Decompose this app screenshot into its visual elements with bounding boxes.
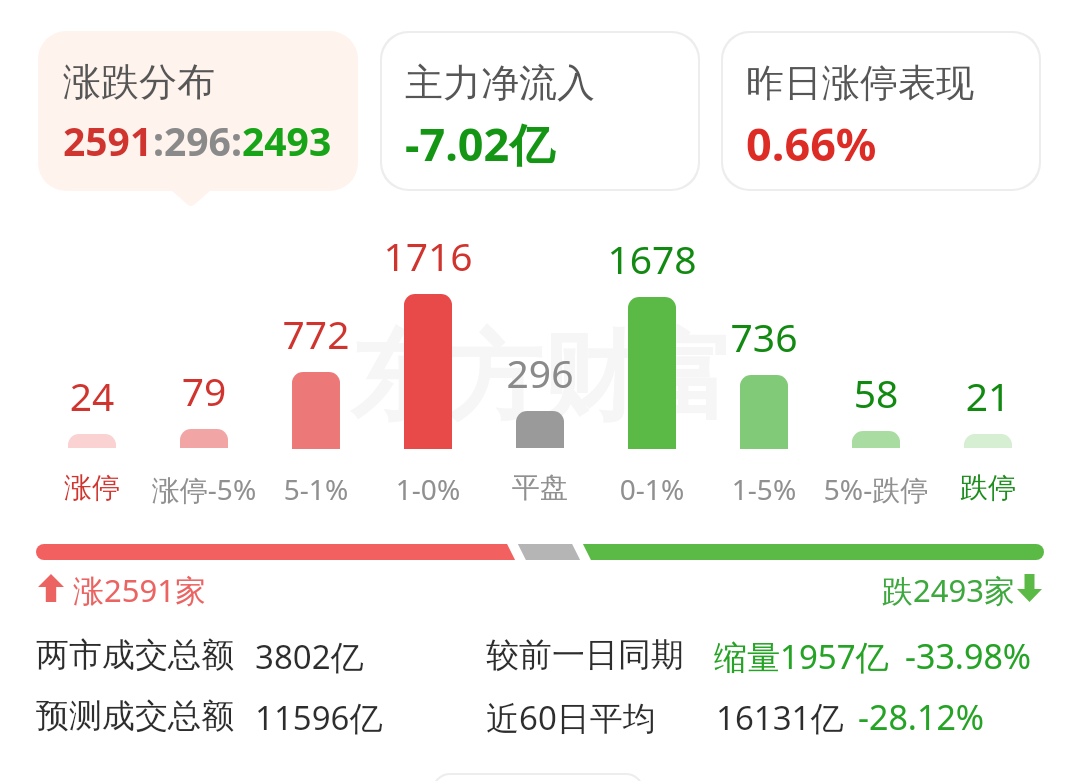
staticText: -7.02亿	[405, 113, 555, 174]
staticText: 24	[36, 369, 148, 422]
button[interactable]	[530, 689, 1060, 741]
staticText: 1-5%	[704, 470, 824, 508]
button[interactable]: 主力净流入	[382, 33, 698, 189]
staticText: 东方财富	[350, 318, 734, 439]
button[interactable]	[260, 230, 372, 508]
button[interactable]	[372, 230, 484, 508]
staticText: 0-1%	[592, 470, 712, 508]
other: Advance decline ratio	[36, 544, 1044, 560]
button[interactable]	[530, 628, 1060, 680]
staticText: 1-0%	[368, 470, 488, 508]
button[interactable]: Expand panel	[434, 775, 642, 781]
other: Advancing	[38, 574, 64, 602]
staticText: 1716	[372, 229, 484, 282]
staticText: 涨停-5%	[144, 470, 264, 508]
staticText: 涨停	[32, 470, 152, 505]
staticText: -33.98%	[905, 633, 1032, 679]
staticText: :	[153, 114, 164, 167]
button[interactable]	[484, 230, 596, 508]
staticText: 两市成交总额	[36, 634, 234, 676]
button[interactable]: 昨日涨停表现	[723, 33, 1039, 189]
staticText: 1678	[596, 232, 708, 285]
button[interactable]	[148, 230, 260, 508]
button[interactable]: 涨跌分布	[38, 31, 358, 191]
staticText: 昨日涨停表现	[746, 59, 974, 107]
staticText: 平盘	[480, 470, 600, 505]
staticText: 296	[164, 114, 231, 167]
staticText: 缩量1957亿	[714, 634, 889, 679]
staticText: 跌2493家	[882, 569, 1015, 607]
staticText: 涨跌分布	[63, 58, 215, 106]
staticText: 296	[484, 346, 596, 399]
button[interactable]	[20, 628, 520, 680]
staticText: -28.12%	[858, 694, 985, 740]
button[interactable]	[36, 230, 148, 508]
button[interactable]: Advancing	[36, 568, 211, 606]
staticText: 79	[148, 364, 260, 417]
staticText: 736	[708, 310, 820, 363]
button[interactable]: 跌2493家	[882, 568, 1044, 606]
staticText: 0.66%	[746, 113, 877, 174]
staticText: 跌停	[928, 470, 1048, 505]
staticText: 3802亿	[255, 634, 364, 679]
button[interactable]	[20, 689, 520, 741]
staticText: 5%-跌停	[816, 470, 936, 508]
staticText: 11596亿	[255, 695, 383, 740]
other: Declining	[1017, 574, 1042, 602]
staticText: 预测成交总额	[36, 695, 234, 737]
staticText: 2591	[63, 114, 153, 167]
staticText: 主力净流入	[405, 59, 595, 107]
staticText: 58	[820, 366, 932, 419]
staticText: 5-1%	[256, 470, 376, 508]
button[interactable]	[932, 230, 1044, 508]
button[interactable]	[708, 230, 820, 508]
staticText: 21	[932, 369, 1044, 422]
button[interactable]	[596, 230, 708, 508]
staticText: 近60日平均	[486, 695, 656, 740]
staticText: 772	[260, 307, 372, 360]
button[interactable]	[820, 230, 932, 508]
staticText: :	[231, 114, 242, 167]
staticText: 16131亿	[716, 695, 844, 740]
staticText: 2493	[242, 114, 332, 167]
staticText: 涨2591家	[73, 569, 206, 607]
staticText: 较前一日同期	[486, 634, 684, 676]
